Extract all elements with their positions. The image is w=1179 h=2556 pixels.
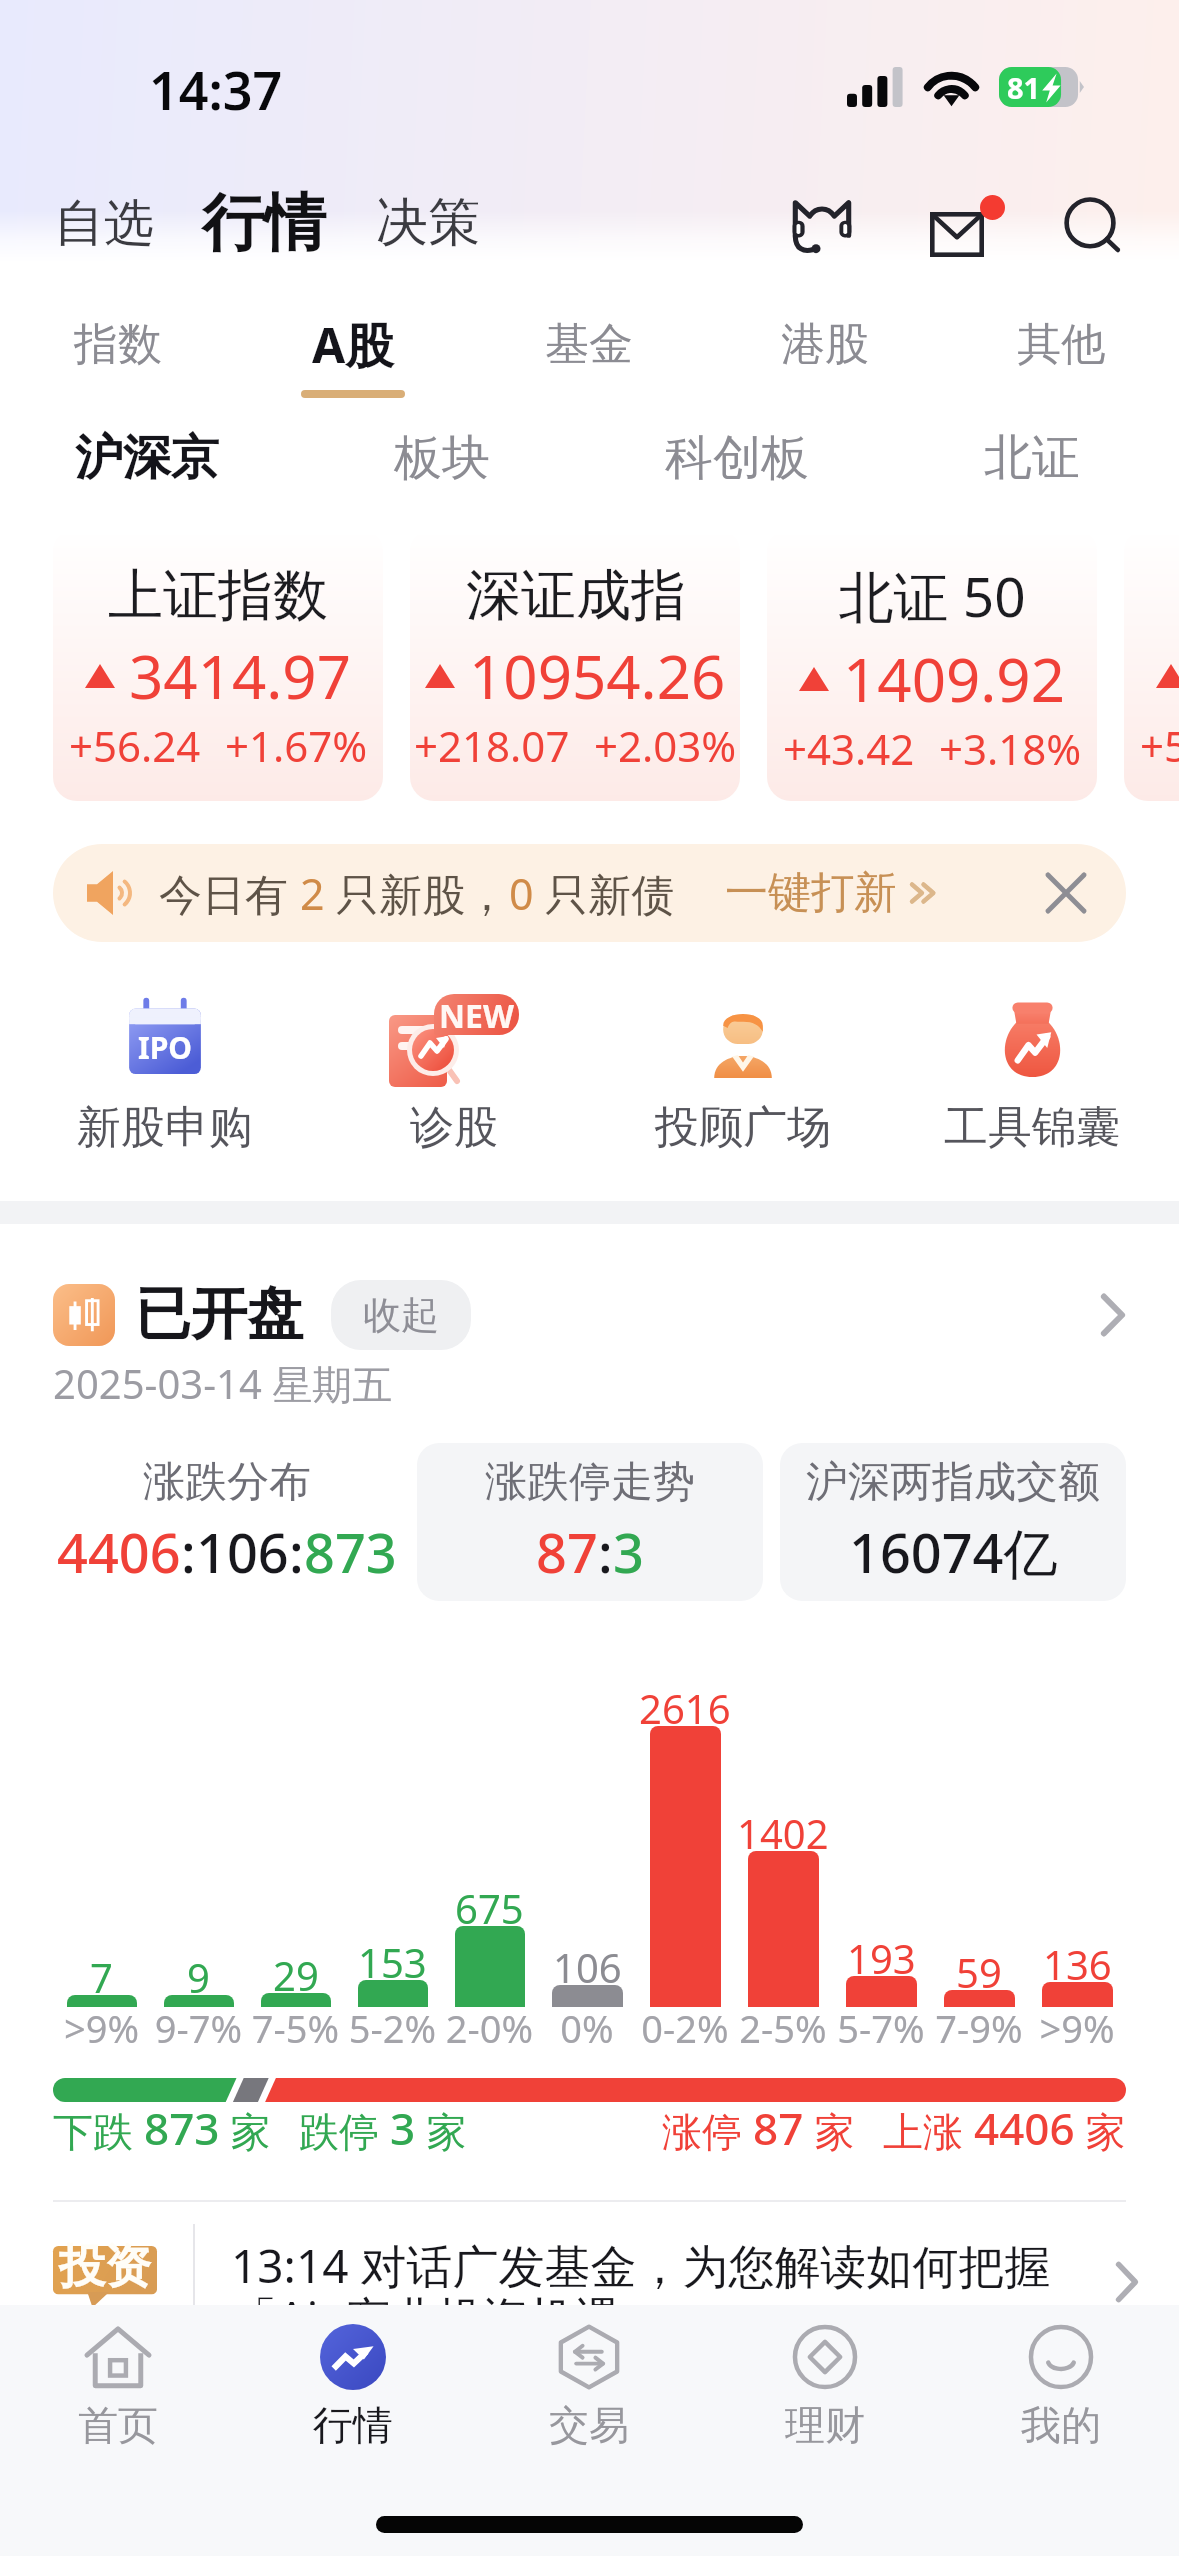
staticText: 涨跌分布 [143, 1456, 311, 1509]
button[interactable]: 板块 [294, 410, 589, 505]
button[interactable]: A股 [235, 296, 471, 410]
staticText: 跌停 [299, 2103, 390, 2158]
staticText: 沪深两指成交额 [806, 1456, 1100, 1509]
staticText: 1402 [737, 1806, 829, 1860]
staticText: 3 [390, 2098, 416, 2158]
button[interactable]: 自选 [54, 178, 154, 269]
staticText: 北证 50 [782, 558, 1082, 633]
staticText: 工具锦囊 [944, 1100, 1120, 1155]
staticText: 家 [804, 2103, 855, 2158]
button[interactable]: 其他 [943, 296, 1179, 410]
button[interactable]: 收起 [331, 1280, 471, 1350]
staticText: 7-5% [247, 2002, 344, 2054]
staticText: NEW [439, 994, 514, 1035]
staticText: +2.03% [594, 717, 737, 774]
button[interactable]: IPO [20, 994, 309, 1155]
staticText: 675 [455, 1881, 524, 1935]
staticText: 交易 [549, 2400, 629, 2450]
staticText: 板块 [394, 428, 490, 488]
staticText: 指数 [74, 317, 162, 372]
staticText: 13:14 对话广发基金，为您解读如何把握 「Ai+产业投资机遇 [231, 2234, 1051, 2349]
button[interactable]: Messages [919, 180, 1019, 272]
staticText: 2616 [639, 1681, 731, 1735]
staticText: 106 [196, 1515, 289, 1589]
staticText: 1409.92 [843, 638, 1065, 720]
staticText: 行情 [202, 184, 326, 262]
button[interactable]: 我的 [943, 2305, 1179, 2465]
staticText: +218.07 [414, 717, 570, 774]
staticText: 决策 [376, 190, 480, 256]
staticText: +56.24 [69, 717, 201, 774]
button[interactable]: 交易 [471, 2305, 707, 2465]
staticText: 一键打新 [725, 866, 897, 920]
staticText: 136 [1043, 1937, 1112, 1991]
button[interactable]: NEW [309, 994, 598, 1155]
button[interactable]: 北证 [884, 410, 1179, 505]
staticText: 基金 [545, 317, 633, 372]
button[interactable]: 行情 [235, 2305, 471, 2465]
staticText: 北证 [984, 428, 1080, 488]
staticText: 上涨 [883, 2103, 974, 2158]
button[interactable]: 工具锦囊 [887, 994, 1176, 1155]
staticText: 59 [956, 1945, 1002, 1999]
staticText: 下跌 [53, 2103, 144, 2158]
staticText: 7-9% [930, 2002, 1028, 2054]
staticText: 10954.26 [469, 635, 726, 717]
staticText: 诊股 [410, 1100, 498, 1155]
button[interactable]: 北证 50 [767, 529, 1097, 801]
button[interactable]: 涨跌分布 [53, 1443, 400, 1601]
button[interactable]: 沪深京 [0, 410, 294, 505]
staticText: 7 [90, 1950, 113, 2004]
staticText: 0-2% [636, 2002, 734, 2054]
button[interactable]: 涨跌停走势 [417, 1443, 763, 1601]
staticText: 投资 [59, 2238, 151, 2296]
staticText: 深证成指 [426, 561, 726, 630]
button[interactable]: 指数 [0, 296, 235, 410]
staticText: 29 [273, 1948, 319, 2002]
staticText: 行情 [313, 2400, 393, 2450]
button[interactable]: 行情 [202, 174, 326, 272]
button[interactable]: 今日有 [53, 844, 1126, 942]
staticText: 9-7% [150, 2002, 247, 2054]
staticText: 3 [613, 1515, 644, 1589]
staticText: 81 [1007, 68, 1041, 107]
button[interactable]: 首页 [0, 2305, 235, 2465]
button[interactable]: 沪深两指成交额 [780, 1443, 1126, 1601]
staticText: 2-5% [734, 2002, 832, 2054]
button[interactable]: 基金 [471, 296, 707, 410]
staticText: 已开盘 [135, 1279, 303, 1350]
staticText: 其他 [1017, 317, 1105, 372]
button[interactable]: 科创板 [589, 410, 884, 505]
button[interactable]: 港股 [707, 296, 943, 410]
staticText: IPO [138, 1027, 193, 1068]
staticText: 上证指数 [68, 561, 368, 630]
button[interactable]: Close [1036, 863, 1096, 923]
staticText: : [598, 1515, 613, 1589]
button[interactable]: Customer service [772, 178, 872, 270]
staticText: : [289, 1515, 304, 1589]
staticText: 我的 [1021, 2400, 1101, 2450]
staticText: 87 [536, 1515, 598, 1589]
button[interactable]: 上证指数 [53, 529, 383, 801]
button[interactable]: 投资 [53, 2202, 1139, 2352]
staticText: 收起 [363, 1291, 439, 1339]
staticText: 5-7% [832, 2002, 930, 2054]
button[interactable]: 决策 [376, 176, 480, 270]
button[interactable]: Search [1042, 178, 1142, 270]
staticText: 科创板 [665, 428, 809, 488]
staticText: 3414.97 [129, 635, 351, 717]
staticText: 首页 [78, 2400, 158, 2450]
button[interactable]: 已开盘 [53, 1279, 1126, 1350]
staticText: +43.42 [783, 720, 915, 777]
staticText: 153 [358, 1935, 427, 1989]
button[interactable]: 一键打新 [725, 866, 937, 920]
button[interactable]: 理财 [707, 2305, 943, 2465]
button[interactable]: 创业板指 [1124, 529, 1179, 801]
staticText: >9% [53, 2002, 150, 2054]
staticText: +1.67% [225, 717, 368, 774]
button[interactable]: 投顾广场 [598, 994, 887, 1155]
staticText: 理财 [785, 2400, 865, 2450]
staticText: 只新股， [325, 864, 509, 923]
button[interactable]: 深证成指 [410, 529, 740, 801]
staticText: 0 [509, 864, 534, 923]
